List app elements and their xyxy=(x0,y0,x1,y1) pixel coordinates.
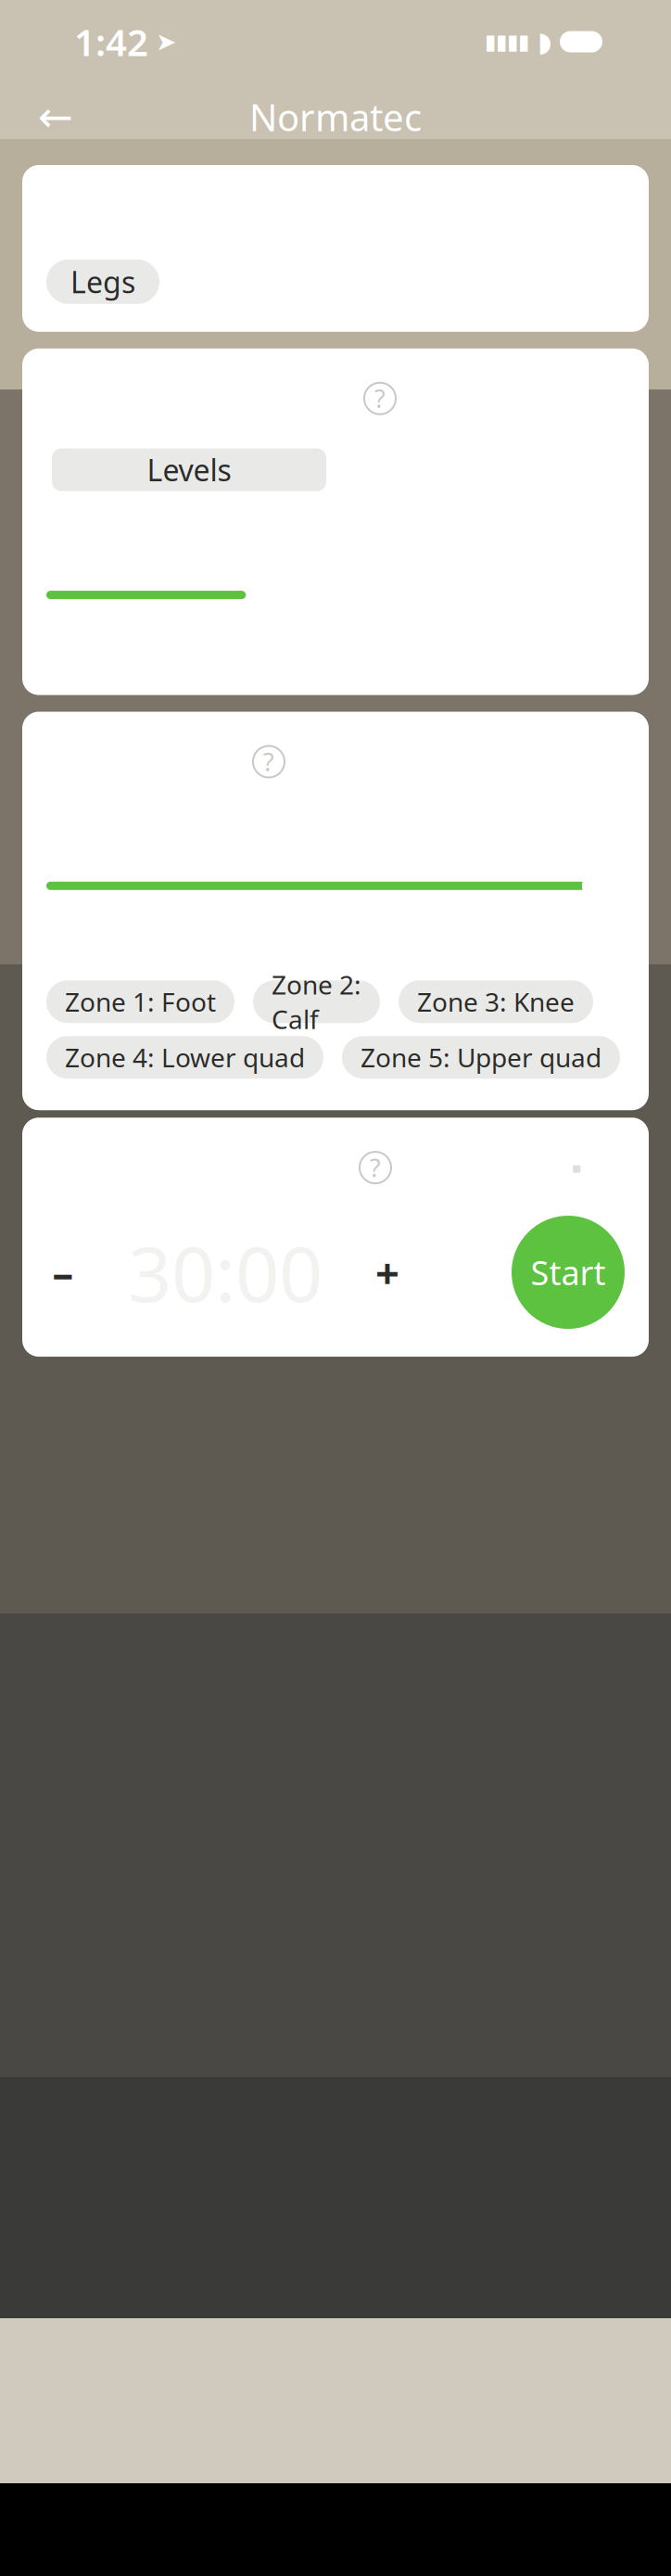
staticText: Normatec xyxy=(249,92,422,141)
staticText: ? xyxy=(263,745,274,778)
staticText: ◗ xyxy=(538,26,551,57)
staticText: + xyxy=(375,1244,399,1300)
staticText: Legs xyxy=(70,262,135,301)
staticText: Zone 2: Calf xyxy=(272,967,361,1036)
button[interactable]: Decrease time xyxy=(39,1248,87,1296)
staticText: 30:00 xyxy=(128,1221,323,1323)
button[interactable]: Increase time xyxy=(363,1248,411,1296)
button[interactable]: Levels xyxy=(52,448,326,491)
button[interactable]: Help xyxy=(364,383,396,414)
staticText: ← xyxy=(38,93,73,141)
staticText: ▪ xyxy=(572,1159,582,1176)
button[interactable]: Zone 1: Foot xyxy=(46,980,234,1023)
staticText: – xyxy=(52,1244,74,1300)
staticText: Zone 5: Upper quad xyxy=(361,1040,601,1075)
button[interactable]: Help xyxy=(253,746,285,777)
staticText: ▮▮▮▮ xyxy=(485,30,529,54)
staticText: ➤ xyxy=(156,28,176,56)
staticText: Zone 4: Lower quad xyxy=(65,1040,305,1075)
staticText: ? xyxy=(370,1151,381,1184)
staticText: ? xyxy=(374,382,386,415)
staticText: Start xyxy=(531,1250,606,1294)
button[interactable]: Zone 4: Lower quad xyxy=(46,1036,323,1079)
staticText: Zone 1: Foot xyxy=(65,984,216,1019)
button[interactable]: Zone 2: Calf xyxy=(253,980,380,1023)
button[interactable]: Zone 5: Upper quad xyxy=(342,1036,620,1079)
button[interactable]: Start xyxy=(512,1216,625,1329)
button[interactable]: Zone 3: Knee xyxy=(399,980,593,1023)
staticText: Levels xyxy=(147,450,231,490)
button[interactable]: Back xyxy=(26,87,85,147)
staticText: Zone 3: Knee xyxy=(417,984,575,1019)
button[interactable]: Legs xyxy=(46,259,159,304)
staticText: 1:42 xyxy=(74,17,148,66)
button[interactable]: Help xyxy=(360,1152,391,1183)
